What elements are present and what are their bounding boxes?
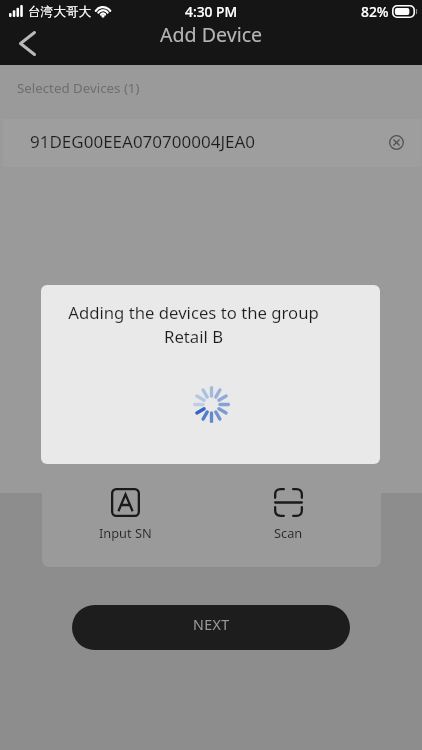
staticText: NEXT [193, 615, 230, 634]
staticText: Add Device [160, 21, 263, 48]
staticText: Adding the devices to the group Retail B [68, 301, 319, 348]
staticText: 82% [361, 2, 389, 21]
staticText: Selected Devices (1) [17, 79, 140, 97]
staticText: Input SN [99, 524, 152, 541]
button[interactable]: Input SN [83, 483, 167, 567]
button[interactable]: NEXT [72, 605, 350, 650]
staticText: 台湾大哥大 [28, 4, 91, 20]
staticText: Scan [274, 524, 303, 541]
staticText: 4:30 PM [185, 2, 238, 21]
button[interactable]: Remove device [383, 129, 409, 155]
button[interactable]: Scan [246, 483, 330, 567]
button[interactable]: Back [5, 21, 49, 65]
staticText: 91DEG00EEA070700004JEA0 [30, 130, 256, 153]
